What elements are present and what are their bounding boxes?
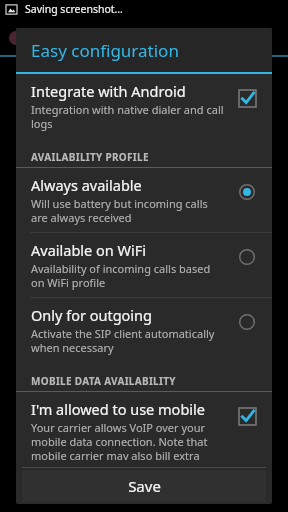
button[interactable]: Select option (235, 310, 259, 334)
button[interactable]: Select option (235, 245, 259, 269)
button[interactable]: Only for outgoing (16, 298, 272, 362)
staticText: Available on WiFi (31, 240, 146, 260)
button[interactable]: Select option (235, 180, 259, 204)
staticText: Integrate with Android (31, 81, 186, 101)
staticText: AVAILABILITY PROFILE (31, 150, 149, 164)
button[interactable]: Save (22, 470, 266, 502)
staticText: Only for outgoing (31, 305, 152, 325)
button[interactable]: Toggle checkbox (235, 86, 259, 110)
staticText: Your carrier allows VoIP over your mobil… (31, 420, 208, 460)
button[interactable]: Available on WiFi (16, 233, 272, 297)
button[interactable]: Integrate with Android (16, 74, 272, 138)
staticText: Activate the SIP client automatically wh… (31, 326, 215, 355)
button[interactable]: Always available (16, 168, 272, 232)
staticText: Integration with native dialer and call … (31, 102, 224, 131)
button[interactable]: Toggle checkbox (235, 404, 259, 428)
staticText: MOBILE DATA AVAILABILITY (31, 374, 176, 388)
staticText: Will use battery but incoming calls are … (31, 196, 208, 225)
staticText: Save (128, 476, 161, 496)
button[interactable]: I'm allowed to use mobile (16, 392, 272, 467)
staticText: I'm allowed to use mobile (31, 399, 205, 419)
staticText: Saving screenshot… (25, 2, 123, 16)
staticText: Always available (31, 175, 142, 195)
staticText: Availability of incoming calls based on … (31, 261, 211, 290)
staticText: Easy configuration (31, 39, 179, 62)
